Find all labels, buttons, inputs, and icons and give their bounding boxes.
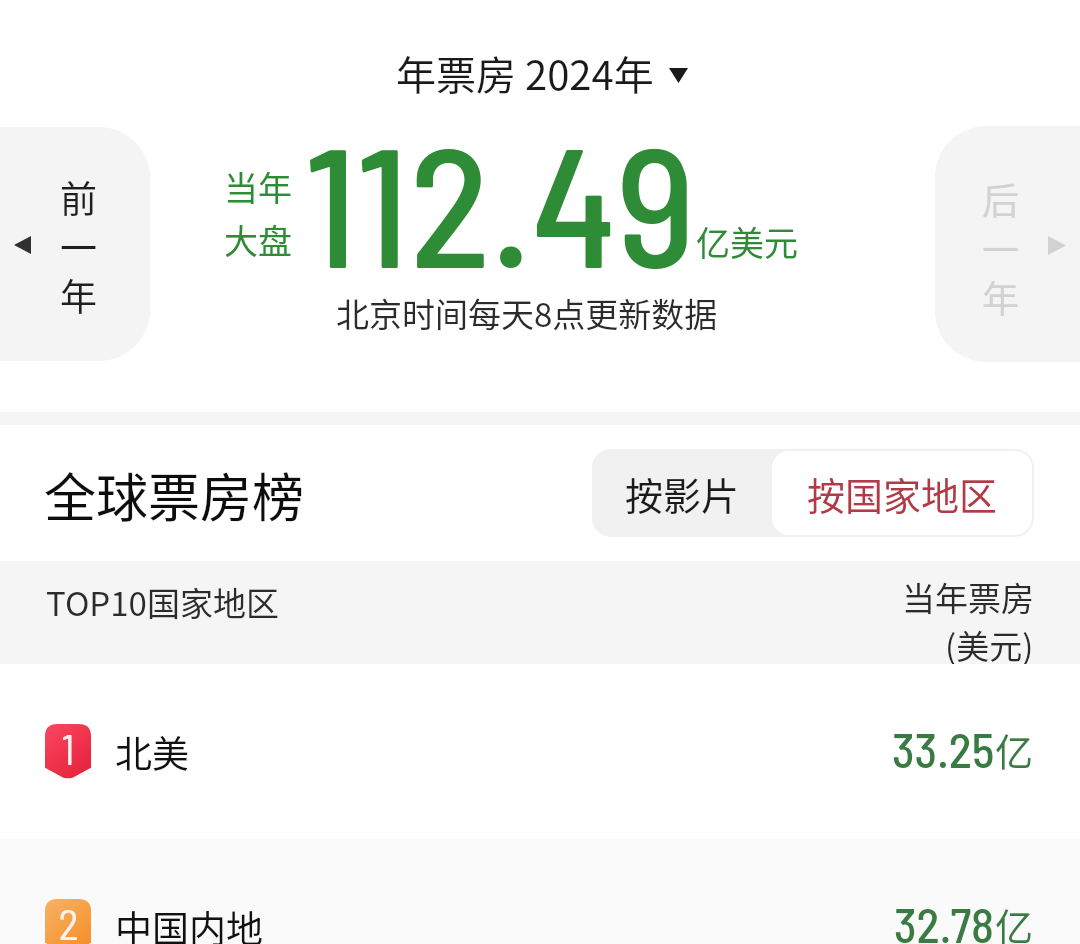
staticText: 33.25: [892, 720, 995, 778]
staticText: 当年票房: [902, 573, 1034, 621]
staticText: 北京时间每天8点更新数据: [336, 289, 718, 337]
staticText: (美元): [945, 621, 1034, 664]
staticText: 当年: [224, 162, 292, 211]
staticText: 年: [982, 270, 1019, 319]
button[interactable]: 1: [0, 664, 1080, 839]
staticText: 年: [60, 268, 97, 317]
button[interactable]: 年票房 2024年: [386, 38, 698, 108]
staticText: 一: [982, 221, 1019, 270]
staticText: 全球票房榜: [44, 457, 305, 532]
staticText: 中国内地: [115, 900, 263, 944]
staticText: 北美: [115, 725, 189, 779]
button[interactable]: 后一年: [935, 126, 1080, 362]
staticText: 前: [60, 170, 97, 219]
staticText: 后: [982, 172, 1019, 221]
button[interactable]: 按影片: [592, 449, 772, 537]
staticText: TOP10国家地区: [46, 578, 279, 626]
button[interactable]: 前一年: [0, 127, 150, 361]
button[interactable]: 2: [0, 839, 1080, 944]
staticText: 1: [61, 722, 75, 774]
staticText: 32.78: [894, 895, 995, 944]
staticText: 年票房 2024年: [396, 44, 654, 102]
staticText: 亿: [995, 897, 1034, 944]
staticText: 按国家地区: [807, 466, 998, 521]
staticText: 2: [58, 897, 79, 944]
staticText: 112.49: [305, 100, 697, 302]
staticText: 按影片: [625, 466, 740, 521]
staticText: 大盘: [224, 215, 292, 264]
staticText: 一: [60, 219, 97, 268]
staticText: 亿美元: [696, 217, 798, 266]
staticText: 亿: [995, 722, 1034, 777]
button[interactable]: 按国家地区: [772, 451, 1032, 535]
